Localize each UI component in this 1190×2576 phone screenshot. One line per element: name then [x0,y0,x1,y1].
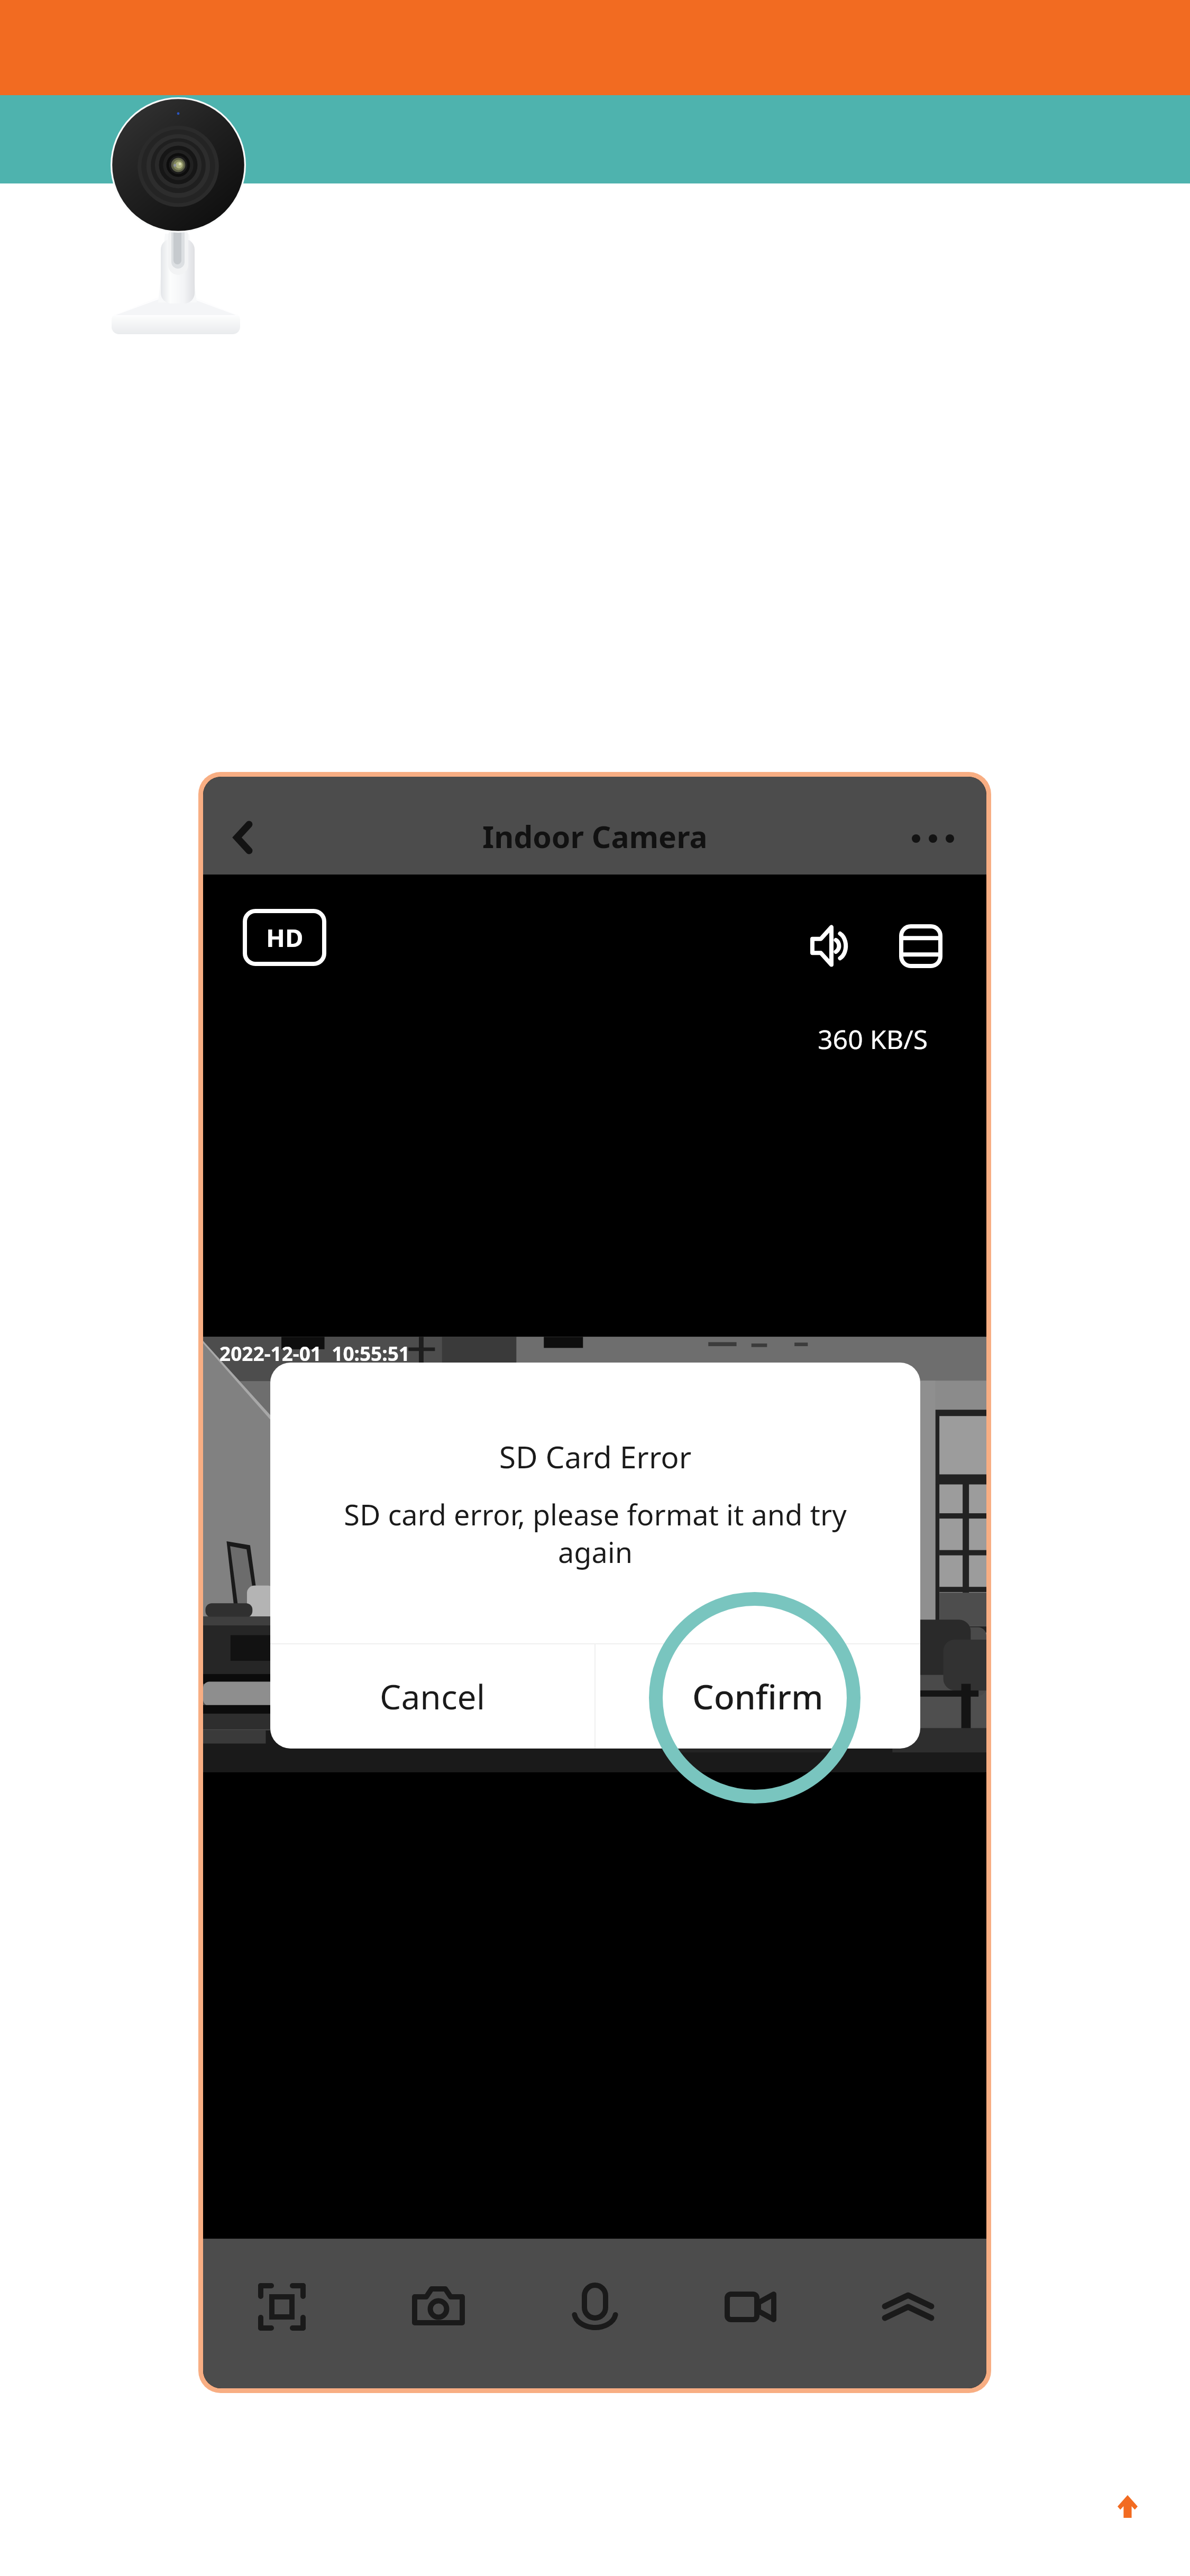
button[interactable]: Back [211,806,274,869]
button[interactable]: More options [899,813,967,864]
button[interactable]: Snapshot [360,2239,517,2388]
button[interactable]: Talk [517,2239,673,2388]
button[interactable]: HD [245,911,324,964]
button[interactable]: Confirm [596,1644,920,1749]
staticText: SD card error, please format it and try … [335,1495,856,1571]
button[interactable]: Playback [892,917,950,975]
staticText: 2022-12-01 10:55:51 [219,1340,410,1366]
button[interactable]: Fullscreen [203,2239,360,2388]
staticText: Indoor Camera [482,816,708,857]
staticText: Cancel [380,1673,486,1719]
button[interactable]: Cancel [270,1644,594,1749]
button[interactable]: Expand [830,2239,986,2388]
button[interactable]: Back to top [1103,2482,1152,2531]
button[interactable]: Record [673,2239,830,2388]
staticText: SD Card Error [270,1436,920,1477]
staticText: HD [266,921,304,954]
button[interactable]: Sound [802,917,861,975]
staticText: Confirm [692,1673,823,1719]
staticText: 360 KB/S [818,1021,928,1057]
